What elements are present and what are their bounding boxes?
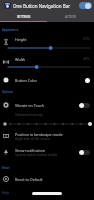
button[interactable]: App icon xyxy=(4,2,11,9)
button[interactable]: Enable navigation bar xyxy=(79,2,92,9)
button[interactable]: Reset to Default xyxy=(0,174,94,184)
button[interactable]: Toggle xyxy=(79,103,90,108)
button[interactable] xyxy=(0,33,94,52)
staticText: Reset to Default xyxy=(15,177,43,182)
button[interactable]: Vibrate on Touch xyxy=(0,100,94,110)
button[interactable] xyxy=(0,111,94,127)
staticText: Reset xyxy=(2,166,10,170)
button[interactable]: Toggle xyxy=(79,150,90,155)
staticText: SETTINGS xyxy=(17,15,31,19)
staticText: Height xyxy=(15,37,27,42)
staticText: Show notification xyxy=(15,148,45,153)
button[interactable]: Show notification xyxy=(0,145,94,159)
staticText: 36% xyxy=(83,57,90,61)
staticText: Width xyxy=(15,57,26,62)
staticText: Help xyxy=(2,191,9,195)
button[interactable]: Button Color xyxy=(0,75,94,85)
staticText: System switch button visible xyxy=(15,153,58,157)
button[interactable]: Position in landscape mode xyxy=(0,129,94,143)
staticText: ACTION xyxy=(65,15,76,19)
button[interactable]: SETTINGS xyxy=(0,11,47,22)
staticText: Right side of the screen xyxy=(15,137,51,141)
staticText: Position in landscape mode xyxy=(15,132,63,137)
staticText: Vibrate on Touch xyxy=(15,103,45,108)
staticText: Options xyxy=(2,90,13,94)
button[interactable] xyxy=(0,53,94,72)
staticText: One Button Navigation Bar xyxy=(13,3,78,9)
staticText: Vibration Intensity xyxy=(15,113,43,117)
button[interactable]: Help xyxy=(2,191,9,195)
staticText: Button Color xyxy=(15,78,38,83)
button[interactable]: ACTION xyxy=(47,11,94,22)
staticText: Appearance xyxy=(2,28,19,32)
staticText: 55% xyxy=(83,37,90,41)
